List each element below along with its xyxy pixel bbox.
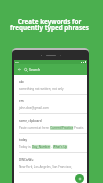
button[interactable]: some_clipboard (14, 114, 87, 133)
button[interactable]: today (14, 133, 87, 152)
staticText: something not written, not only (19, 87, 64, 91)
other: Back (18, 68, 21, 71)
staticText: abc (19, 80, 25, 84)
button[interactable]: abc (14, 75, 87, 94)
staticText: today (19, 138, 28, 142)
staticText: em (19, 99, 24, 103)
button[interactable]: Add keyword (75, 174, 84, 183)
other: Search (24, 68, 28, 72)
button[interactable]: Back (14, 64, 87, 75)
staticText: Paste current at here: Current/Practice … (19, 126, 84, 130)
staticText: john.doe@gmail.com (19, 106, 49, 110)
staticText: Create keywords for frequently typed phr… (10, 17, 89, 32)
staticText: New York, Los Angeles, San Francisco, Ch… (19, 165, 84, 169)
button[interactable]: DWCtvWu (14, 153, 87, 172)
staticText: Search (29, 67, 41, 72)
staticText: some_clipboard (19, 119, 42, 123)
staticText: 9:41 (15, 61, 20, 64)
staticText: Today is: Day_Number - What's Up (19, 145, 68, 149)
button[interactable]: em (14, 94, 87, 113)
staticText: DWCtvWu (19, 158, 34, 162)
